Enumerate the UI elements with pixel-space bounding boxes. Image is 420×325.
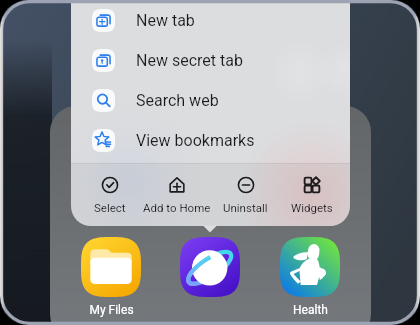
button[interactable]: Select (74, 170, 146, 218)
button[interactable]: Add to Home (141, 170, 213, 218)
staticText: Search web (136, 91, 219, 110)
staticText: My Files (89, 303, 134, 317)
staticText: Widgets (291, 201, 333, 214)
button[interactable]: Health (280, 233, 340, 317)
button[interactable]: Search web (71, 80, 350, 120)
staticText: Health (293, 303, 328, 317)
button[interactable]: Widgets (276, 170, 348, 218)
button[interactable]: Internet (180, 233, 240, 303)
staticText: View bookmarks (136, 131, 255, 150)
staticText: Uninstall (223, 201, 268, 214)
button[interactable]: View bookmarks (71, 120, 350, 160)
staticText: New secret tab (136, 51, 243, 70)
button[interactable]: New secret tab (71, 40, 350, 80)
button[interactable]: My Files (81, 233, 141, 317)
staticText: Add to Home (143, 201, 211, 214)
staticText: New tab (136, 11, 195, 30)
button[interactable]: Uninstall (209, 170, 281, 218)
button[interactable]: New tab (71, 0, 350, 40)
staticText: Select (94, 201, 126, 214)
